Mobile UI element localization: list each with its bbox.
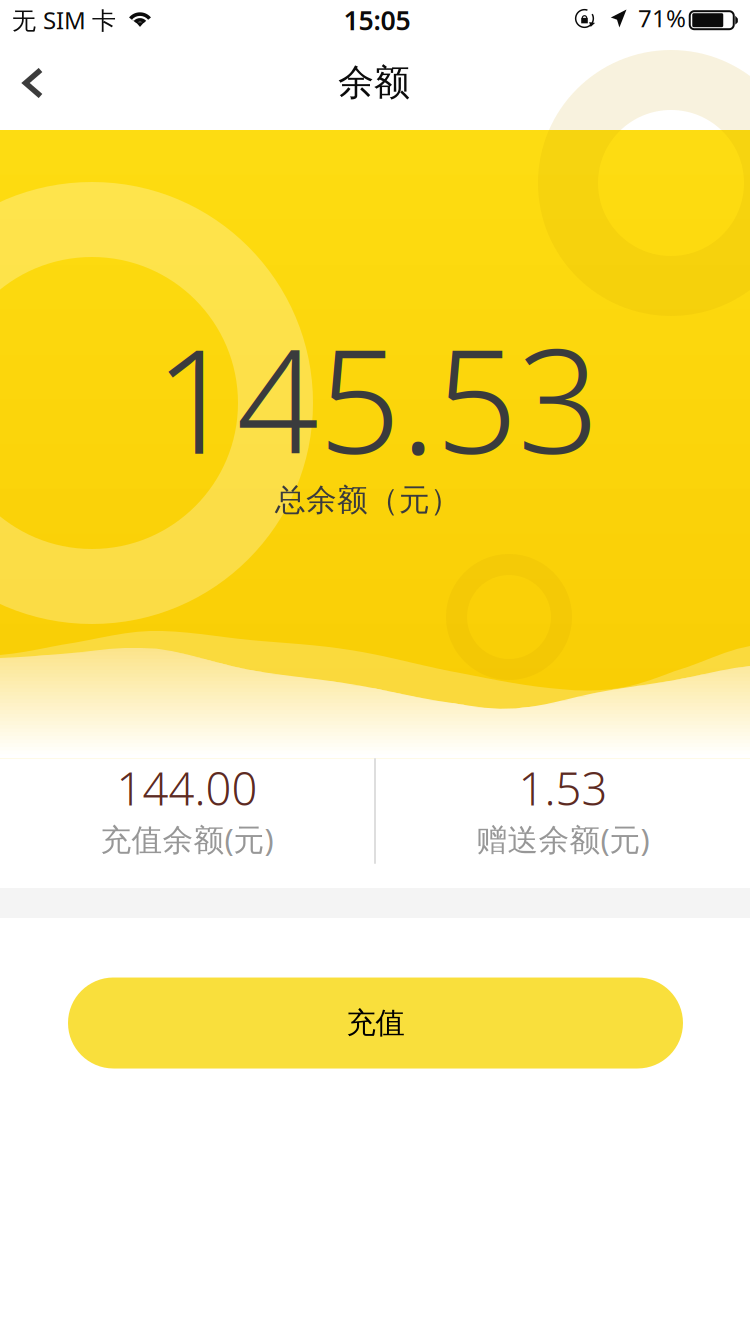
staticText: 总余额（元） [275, 481, 461, 519]
button[interactable]: 充值 [68, 977, 683, 1068]
staticText: 充值余额(元) [100, 819, 273, 859]
button[interactable]: Back [0, 41, 66, 125]
staticText: 充值 [346, 1005, 404, 1041]
staticText: 余额 [338, 60, 410, 105]
staticText: 无 SIM 卡 [12, 4, 116, 36]
staticText: 144.00 [116, 758, 257, 818]
staticText: 145.53 [154, 302, 599, 494]
staticText: 赠送余额(元) [476, 819, 649, 859]
staticText: 15:05 [343, 2, 410, 38]
staticText: 1.53 [518, 758, 607, 818]
staticText: 71% [638, 2, 686, 34]
